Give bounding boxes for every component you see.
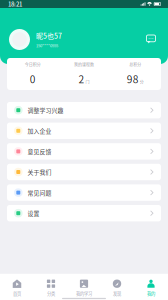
button[interactable]: 我的学习: [68, 279, 100, 297]
button[interactable]: 关于我们: [7, 164, 161, 180]
staticText: 昵5也57: [36, 31, 62, 41]
staticText: 今日积分: [25, 62, 41, 68]
staticText: 常见问题: [28, 188, 52, 197]
button[interactable]: 我的: [134, 279, 168, 297]
staticText: 18:21: [8, 0, 22, 8]
staticText: 分类: [47, 290, 55, 297]
button[interactable]: 加入企业: [7, 123, 161, 139]
staticText: 我的课程数: [74, 62, 94, 68]
button[interactable]: 首页: [0, 279, 34, 297]
staticText: 意见反馈: [28, 147, 52, 156]
staticText: 98: [127, 72, 139, 86]
staticText: 总积分: [129, 62, 141, 68]
button[interactable]: 分类: [34, 279, 68, 297]
staticText: 门: [85, 79, 89, 85]
staticText: 调整学习兴趣: [28, 106, 64, 114]
button[interactable]: 意见反馈: [7, 143, 161, 160]
button[interactable]: 调整学习兴趣: [7, 102, 161, 118]
button[interactable]: 设置: [7, 205, 161, 221]
staticText: 分: [140, 79, 144, 85]
staticText: 我的学习: [76, 290, 92, 297]
staticText: 2: [78, 72, 84, 86]
staticText: 150****0555: [36, 43, 58, 48]
staticText: 关于我们: [28, 168, 52, 176]
button[interactable]: Messages: [146, 34, 156, 44]
staticText: 设置: [28, 209, 40, 217]
button[interactable]: 发现: [100, 279, 134, 297]
staticText: 加入企业: [28, 127, 52, 135]
staticText: 首页: [13, 290, 21, 297]
staticText: 发现: [113, 290, 121, 297]
staticText: 0: [30, 72, 36, 86]
button[interactable]: 常见问题: [7, 184, 161, 201]
staticText: 我的: [147, 290, 155, 297]
